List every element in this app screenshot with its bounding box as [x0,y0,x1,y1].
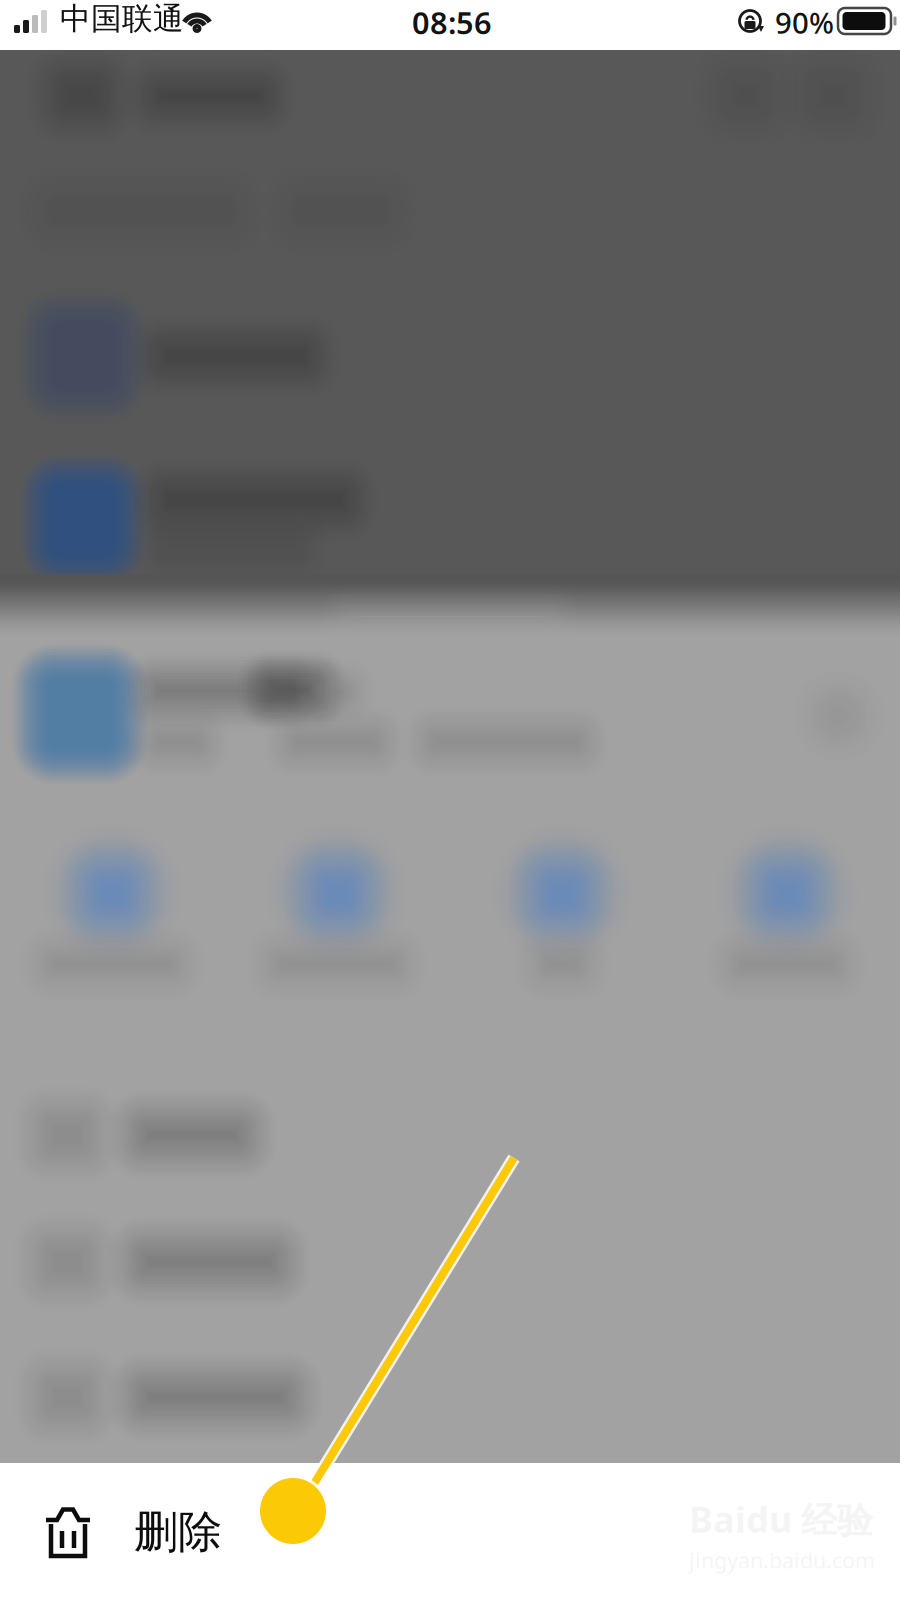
staticText: Baidu 经验 [689,1495,873,1543]
button[interactable]: Action [0,1198,900,1326]
button[interactable]: Share target [36,855,188,1005]
staticText: 90% [775,3,834,42]
staticText: jingyan.baidu.com [689,1546,875,1574]
button[interactable]: Action [0,1071,900,1199]
staticText: 08:56 [412,2,492,43]
button[interactable]: Share target [486,855,638,1005]
button[interactable]: Share target [711,855,863,1005]
button[interactable]: Action [0,1333,900,1461]
button[interactable]: 删除 [0,1463,520,1600]
button[interactable]: Share target [261,855,413,1005]
staticText: 删除 [134,1505,222,1559]
staticText: 中国联通 [60,0,184,38]
